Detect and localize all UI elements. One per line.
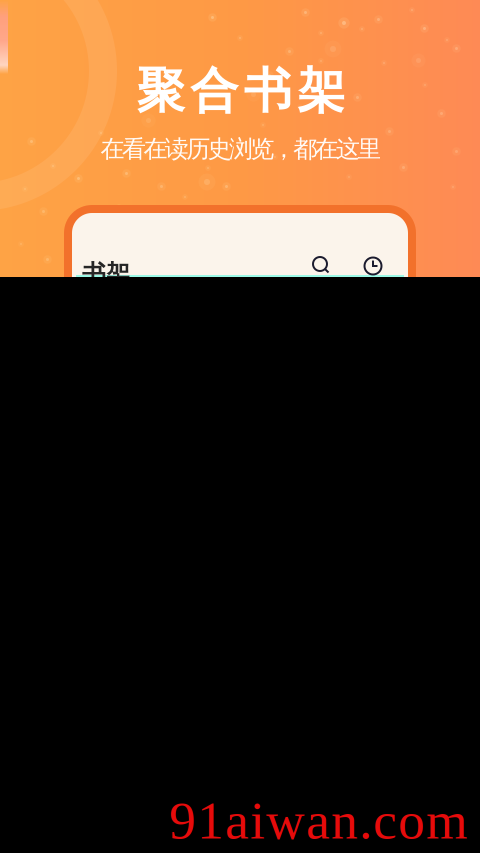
staticText: 聚合书架 bbox=[137, 61, 345, 120]
button[interactable]: Search bbox=[304, 249, 336, 281]
staticText: 在看在读历史浏览，都在这里 bbox=[101, 134, 381, 164]
staticText: 书架 bbox=[82, 259, 130, 288]
button[interactable]: History bbox=[357, 249, 389, 281]
button[interactable]: 书架 bbox=[82, 259, 152, 303]
staticText: 91aiwan.com bbox=[169, 791, 467, 850]
